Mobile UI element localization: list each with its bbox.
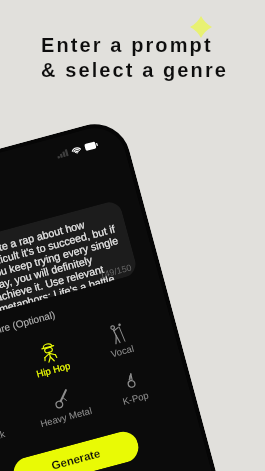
button[interactable]: Heavy Metal [23, 380, 103, 436]
staticText: Genre (Optional) [0, 309, 57, 339]
button[interactable]: Generate [10, 428, 142, 471]
staticText: Generate [50, 447, 102, 471]
staticText: Vocal [109, 343, 135, 359]
staticText: Enter a prompt & select a genre [41, 34, 229, 81]
staticText: K-Pop [121, 389, 150, 407]
button[interactable]: Write a rap about how difficult it's to … [0, 199, 139, 330]
button[interactable]: K-Pop [93, 361, 172, 417]
staticText: Heavy Metal [39, 405, 93, 429]
button[interactable]: Hip Hop [11, 333, 90, 388]
staticText: Hip Hop [35, 360, 72, 379]
button[interactable]: Folk [0, 399, 33, 454]
staticText: Folk [0, 428, 6, 443]
button[interactable]: Vocal [80, 314, 159, 369]
staticText: Write a rap about how difficult it's to … [0, 210, 129, 311]
staticText: 149/150 [99, 262, 133, 281]
